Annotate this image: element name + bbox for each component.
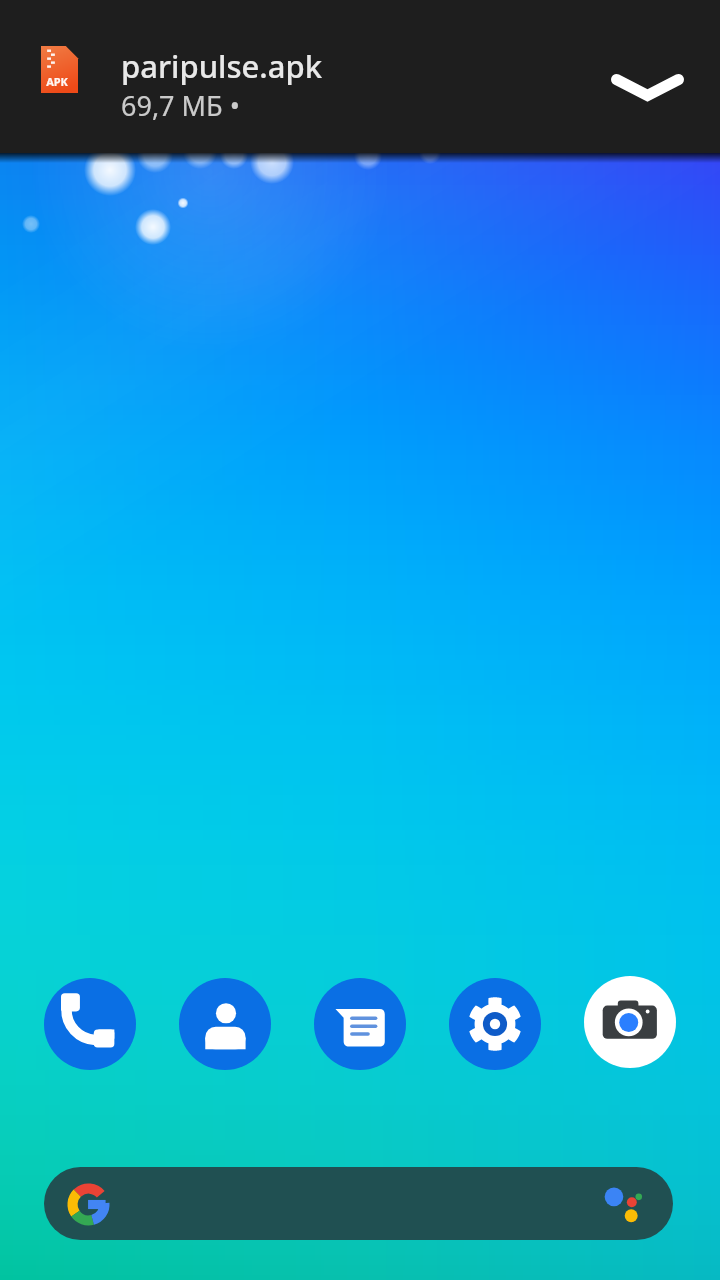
button[interactable]: Phone [44,978,136,1070]
staticText: 69,7 МБ • [121,87,240,124]
staticText: paripulse.apk [121,45,323,87]
button[interactable]: Google Assistant [586,1167,659,1240]
staticText: APK [46,74,68,89]
button[interactable]: Settings [449,978,541,1070]
button[interactable]: Search with Google [44,1167,673,1240]
button[interactable]: Contacts [179,978,271,1070]
button[interactable]: Google Search [52,1167,125,1240]
button[interactable]: Expand notification [592,33,702,141]
button[interactable]: Messages [314,978,406,1070]
button[interactable]: Camera [584,976,676,1068]
button[interactable]: APK [0,0,720,153]
